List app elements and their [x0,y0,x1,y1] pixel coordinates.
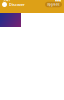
staticText: Discover [9,2,25,7]
button[interactable]: Upgrade [45,2,62,7]
staticText: Upgrade [47,3,60,6]
staticText: 9:41 [3,0,10,2]
staticText: ▮▮▮ [55,0,61,2]
